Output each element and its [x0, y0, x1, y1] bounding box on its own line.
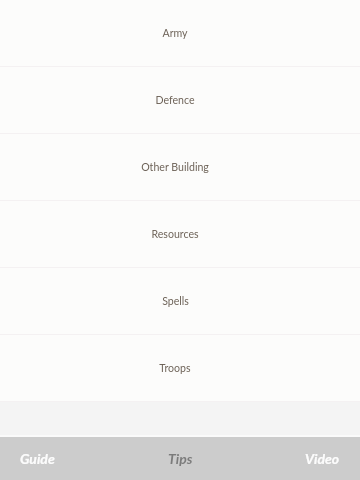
- button[interactable]: Troops: [0, 335, 360, 402]
- staticText: Tips: [168, 450, 193, 467]
- button[interactable]: Other Building: [0, 134, 360, 201]
- button[interactable]: Video: [240, 437, 360, 480]
- staticText: Video: [305, 450, 340, 467]
- staticText: Spells: [162, 295, 189, 308]
- staticText: Other Building: [141, 161, 209, 174]
- staticText: Guide: [20, 450, 55, 467]
- staticText: Defence: [155, 94, 195, 107]
- button[interactable]: Army: [0, 0, 360, 67]
- button[interactable]: Guide: [0, 437, 120, 480]
- staticText: Troops: [159, 362, 191, 375]
- button[interactable]: Spells: [0, 268, 360, 335]
- staticText: Resources: [151, 228, 199, 241]
- staticText: Army: [162, 27, 188, 40]
- button[interactable]: Resources: [0, 201, 360, 268]
- button[interactable]: Tips: [120, 437, 240, 480]
- button[interactable]: Defence: [0, 67, 360, 134]
